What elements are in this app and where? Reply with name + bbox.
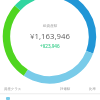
staticText: 評価額 bbox=[60, 87, 71, 91]
staticText: 資産クラス bbox=[4, 87, 22, 91]
staticText: 総資産額 bbox=[43, 24, 58, 29]
staticText: +¥23,946 bbox=[40, 43, 60, 49]
staticText: ¥1,163,946 bbox=[30, 31, 70, 42]
staticText: 比率 bbox=[89, 87, 96, 91]
